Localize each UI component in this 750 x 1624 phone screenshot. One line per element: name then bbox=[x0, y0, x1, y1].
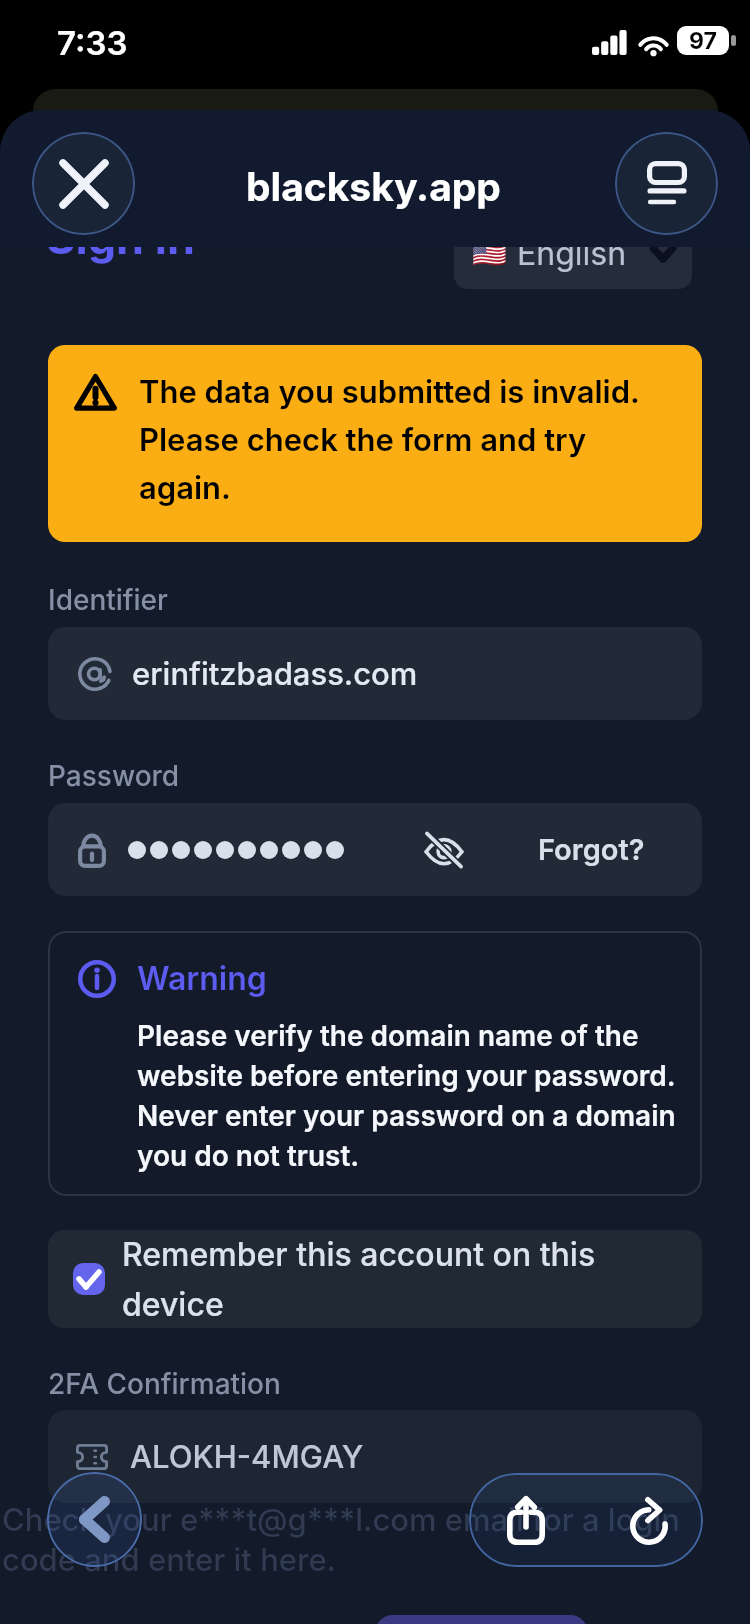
button[interactable]: Next bbox=[375, 1615, 588, 1624]
staticText: Sign in bbox=[46, 210, 195, 264]
button[interactable]: ALOKH-4MGAY bbox=[48, 1410, 702, 1503]
staticText: erinfitzbadass.com bbox=[132, 655, 418, 693]
button[interactable]: Forgot? bbox=[538, 832, 645, 867]
button[interactable]: Remember this account on this device bbox=[48, 1230, 702, 1328]
staticText: Remember this account on this device bbox=[122, 1235, 627, 1324]
button[interactable]: Share bbox=[491, 1485, 561, 1555]
staticText: 2FA Confirmation bbox=[48, 1367, 281, 1401]
staticText: ALOKH-4MGAY bbox=[130, 1438, 364, 1476]
staticText: Identifier bbox=[48, 583, 168, 617]
staticText: Warning bbox=[137, 959, 267, 998]
button[interactable]: erinfitzbadass.com bbox=[48, 627, 702, 720]
staticText: Password bbox=[48, 759, 180, 793]
staticText: 🇺🇸 bbox=[472, 237, 507, 270]
button[interactable]: Reader view bbox=[615, 132, 718, 235]
staticText: 97 bbox=[689, 27, 717, 55]
button[interactable]: Show password bbox=[415, 824, 473, 876]
staticText: 7:33 bbox=[57, 23, 128, 63]
button[interactable]: 🇺🇸 bbox=[454, 217, 692, 289]
staticText: English bbox=[517, 234, 627, 273]
staticText: The data you submitted is invalid. Pleas… bbox=[139, 373, 680, 507]
button[interactable]: Close bbox=[32, 132, 135, 235]
staticText: blacksky.app bbox=[246, 163, 501, 210]
button[interactable]: Reload bbox=[614, 1485, 684, 1555]
staticText: Check your e***t@g***l.com email for a l… bbox=[2, 1501, 702, 1579]
button[interactable]: Back bbox=[47, 1472, 142, 1567]
staticText: Please verify the domain name of the web… bbox=[137, 1019, 697, 1173]
